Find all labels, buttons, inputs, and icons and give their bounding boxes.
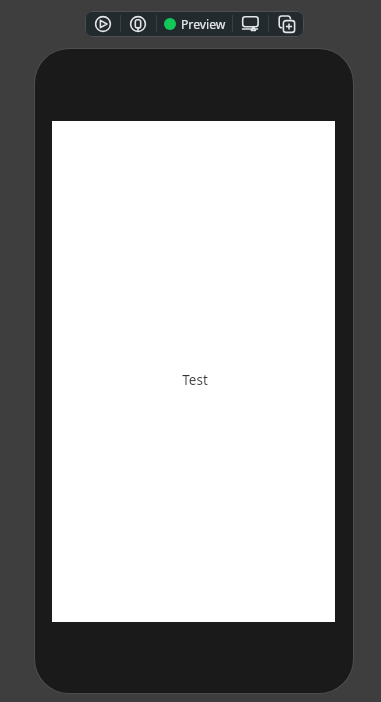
button[interactable]: Run on device: [232, 11, 268, 37]
staticText: Test: [182, 371, 208, 389]
button[interactable]: Interactive preview: [120, 11, 156, 37]
button[interactable]: Preview: [156, 11, 232, 37]
staticText: Preview: [181, 16, 226, 33]
button[interactable]: Run preview: [85, 11, 120, 37]
button[interactable]: Copy preview: [268, 11, 303, 37]
